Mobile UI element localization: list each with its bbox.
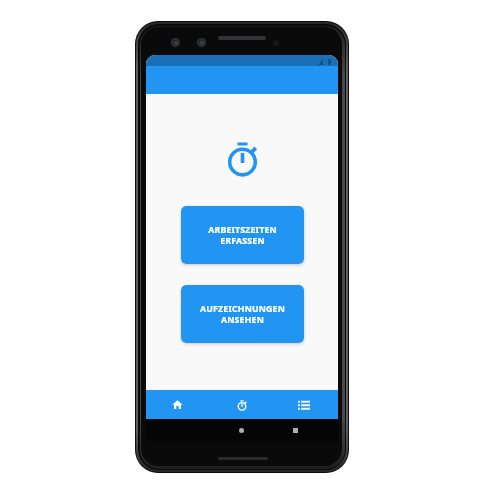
staticText: AUFZEICHNUNGEN ANSEHEN <box>200 303 285 326</box>
button[interactable]: Zeit erfassen <box>210 390 274 419</box>
button[interactable]: Aufzeichnungen <box>274 390 338 419</box>
staticText: ARBEITSZEITEN ERFASSEN <box>208 224 277 247</box>
button[interactable]: Home <box>146 390 210 419</box>
button[interactable]: AUFZEICHNUNGEN ANSEHEN <box>181 285 304 343</box>
button[interactable]: ARBEITSZEITEN ERFASSEN <box>181 206 304 264</box>
